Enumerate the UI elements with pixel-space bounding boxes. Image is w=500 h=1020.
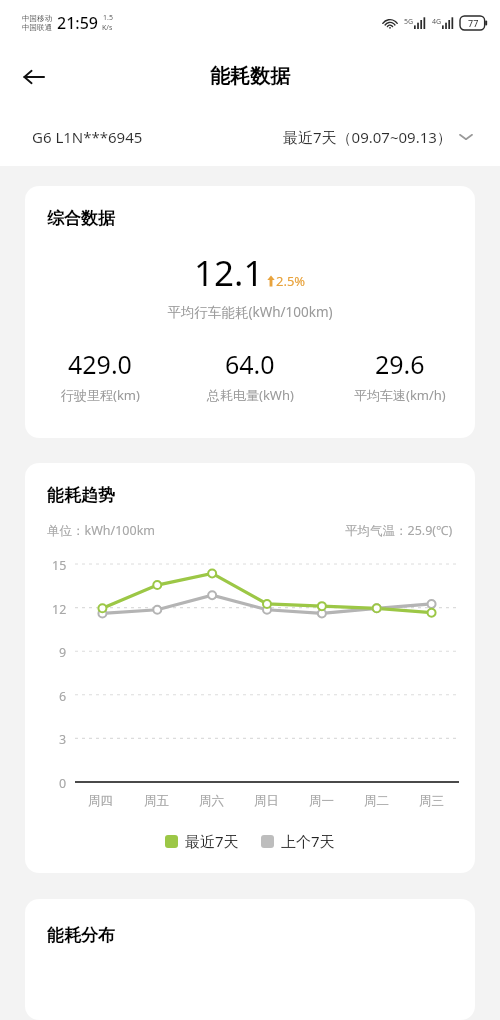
staticText: 总耗电量(kWh) <box>207 386 294 404</box>
staticText: 429.0 <box>68 347 132 381</box>
staticText: 能耗数据 <box>210 64 290 89</box>
staticText: 5G <box>404 17 414 27</box>
staticText: 9 <box>59 644 67 658</box>
staticText: 周六 <box>199 793 224 809</box>
staticText: 6 <box>59 688 67 702</box>
staticText: 综合数据 <box>47 208 115 229</box>
staticText: 15 <box>52 557 67 571</box>
staticText: K/s <box>102 23 113 33</box>
button[interactable]: Back <box>10 53 58 101</box>
staticText: 上个7天 <box>281 831 335 851</box>
staticText: 最近7天（09.07~09.13） <box>283 127 452 147</box>
staticText: 64.0 <box>225 347 275 381</box>
staticText: 77 <box>468 17 479 29</box>
staticText: 29.6 <box>375 347 425 381</box>
staticText: 最近7天 <box>185 831 239 851</box>
staticText: 周二 <box>364 793 389 809</box>
staticText: 3 <box>59 731 67 745</box>
staticText: 周四 <box>88 793 113 809</box>
staticText: G6 L1N***6945 <box>32 127 143 147</box>
staticText: 周三 <box>419 793 444 809</box>
staticText: 中国移动 <box>22 14 52 23</box>
staticText: 能耗分布 <box>47 925 115 946</box>
staticText: 平均行车能耗(kWh/100km) <box>25 303 475 321</box>
staticText: 2.5% <box>276 272 306 290</box>
staticText: 周一 <box>309 793 334 809</box>
staticText: 周五 <box>144 793 169 809</box>
button[interactable]: 最近7天 <box>165 831 239 851</box>
staticText: 21:59 <box>57 12 98 34</box>
staticText: 0 <box>59 775 67 789</box>
staticText: 中国联通 <box>22 23 52 32</box>
staticText: 12.1 <box>194 249 264 297</box>
staticText: 能耗趋势 <box>47 485 115 506</box>
button[interactable]: 上个7天 <box>261 831 335 851</box>
staticText: 1.5 <box>103 13 113 23</box>
staticText: 平均气温：25.9(℃) <box>345 522 453 539</box>
staticText: 12 <box>52 601 67 615</box>
staticText: 单位：kWh/100km <box>47 522 155 539</box>
staticText: 平均车速(km/h) <box>354 386 446 404</box>
staticText: 4G <box>432 17 442 27</box>
staticText: 周日 <box>254 793 279 809</box>
staticText: 行驶里程(km) <box>61 386 140 404</box>
button[interactable]: 最近7天（09.07~09.13） <box>279 123 478 151</box>
